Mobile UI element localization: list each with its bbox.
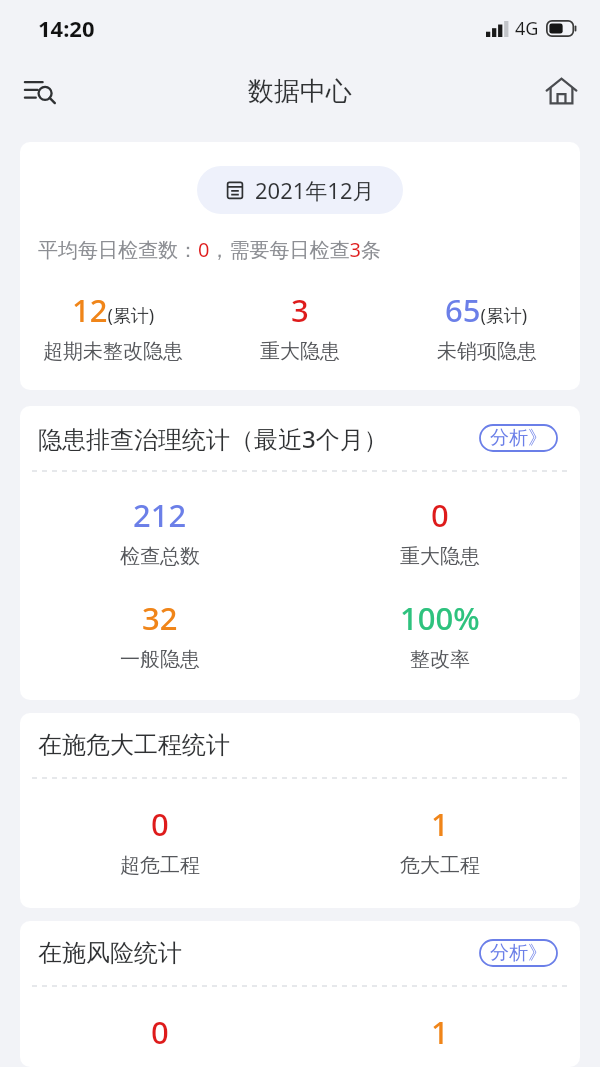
staticText: 在施危大工程统计 bbox=[38, 730, 230, 760]
staticText: 0 bbox=[151, 803, 169, 845]
staticText: 65(累计) bbox=[445, 289, 528, 331]
staticText: 检查总数 bbox=[120, 544, 200, 569]
staticText: 2021年12月 bbox=[255, 175, 375, 205]
staticText: 0 bbox=[151, 1011, 169, 1053]
staticText: 数据中心 bbox=[248, 75, 352, 108]
button[interactable]: 分析》 bbox=[475, 421, 562, 455]
staticText: 4G bbox=[515, 16, 539, 41]
staticText: 在施风险统计 bbox=[38, 938, 182, 968]
staticText: 12(累计) bbox=[72, 289, 155, 331]
staticText: 100% bbox=[400, 597, 480, 639]
staticText: 未销项隐患 bbox=[437, 339, 537, 364]
staticText: 隐患排查治理统计（最近3个月） bbox=[38, 422, 388, 455]
staticText: 分析》 bbox=[490, 941, 547, 965]
staticText: 分析》 bbox=[490, 426, 547, 450]
staticText: 3 bbox=[291, 289, 309, 331]
button[interactable]: Search list bbox=[12, 64, 66, 118]
staticText: 14:20 bbox=[38, 13, 95, 43]
staticText: 重大隐患 bbox=[400, 544, 480, 569]
staticText: 1 bbox=[431, 1011, 449, 1053]
button[interactable]: 分析》 bbox=[475, 936, 562, 970]
staticText: 危大工程 bbox=[400, 853, 480, 878]
staticText: 一般隐患 bbox=[120, 647, 200, 672]
staticText: 超危工程 bbox=[120, 853, 200, 878]
staticText: 重大隐患 bbox=[260, 339, 340, 364]
button[interactable]: Home bbox=[534, 64, 588, 118]
staticText: 平均每日检查数：0，需要每日检查3条 bbox=[38, 236, 381, 263]
staticText: 32 bbox=[142, 597, 178, 639]
staticText: 1 bbox=[431, 803, 449, 845]
staticText: 212 bbox=[133, 494, 187, 536]
staticText: 超期未整改隐患 bbox=[43, 339, 183, 364]
button[interactable]: 2021年12月 bbox=[197, 166, 403, 214]
staticText: 0 bbox=[431, 494, 449, 536]
staticText: 整改率 bbox=[410, 647, 470, 672]
